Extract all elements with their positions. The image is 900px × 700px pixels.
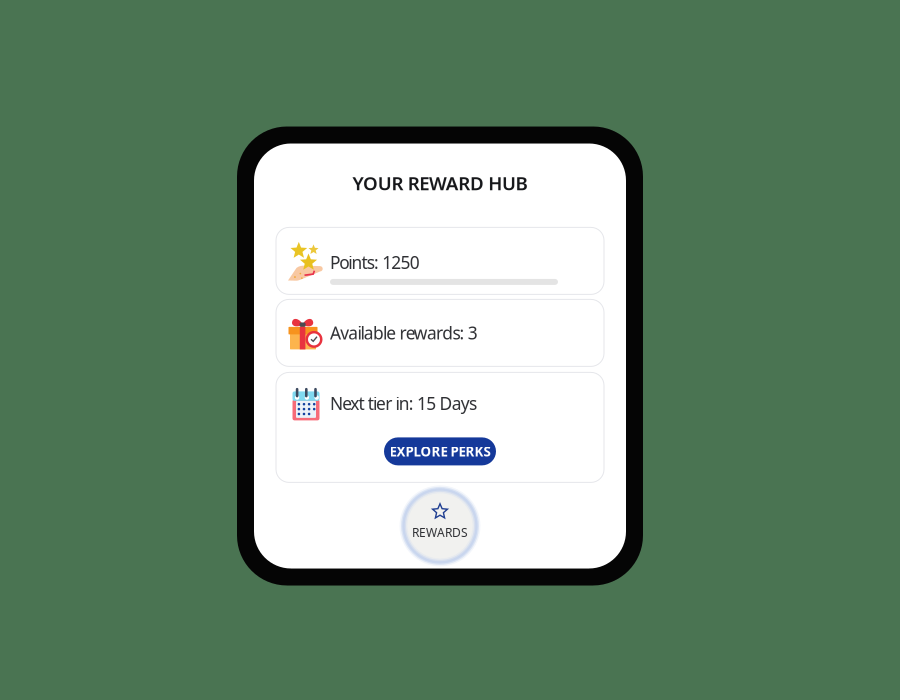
staticText: EXPLORE PERKS	[389, 442, 490, 460]
staticText: REWARDS	[412, 524, 468, 540]
staticText: Points: 1250	[330, 251, 420, 274]
staticText: YOUR REWARD HUB	[352, 171, 527, 195]
staticText: Available rewards: 3	[330, 321, 478, 344]
button[interactable]: Rewards	[403, 489, 476, 562]
staticText: Next tier in: 15 Days	[330, 392, 477, 415]
button[interactable]: Available rewards: 3	[276, 299, 604, 366]
button[interactable]: EXPLORE PERKS	[384, 437, 496, 465]
button[interactable]: Points: 1250	[276, 227, 604, 294]
